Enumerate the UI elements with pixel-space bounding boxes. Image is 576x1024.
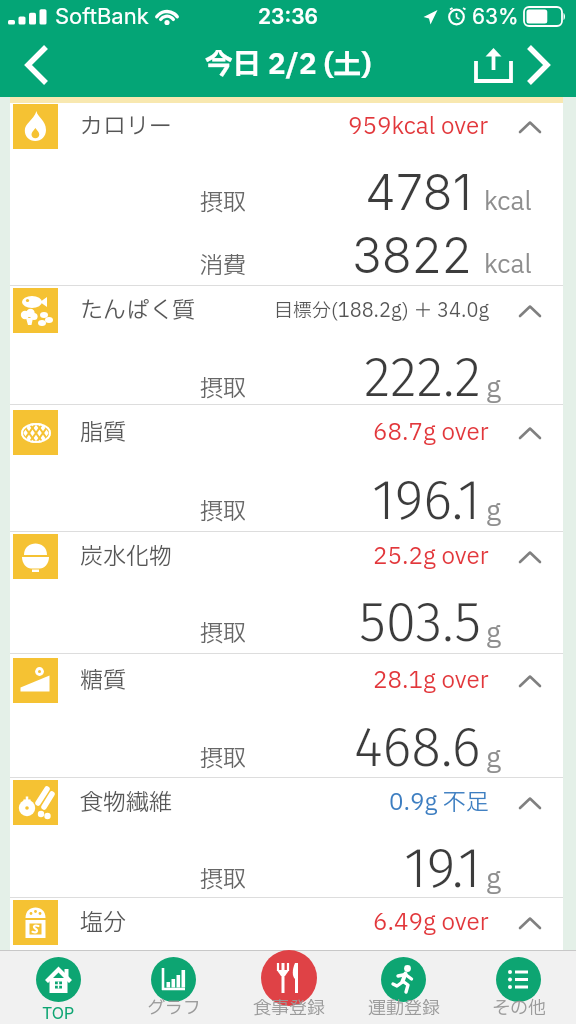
staticText: 摂取	[200, 863, 246, 897]
staticText: 25.2g over	[373, 540, 489, 574]
staticText: その他	[492, 995, 546, 1022]
staticText: 摂取	[200, 372, 246, 406]
staticText: g	[486, 368, 501, 408]
button[interactable]: カロリー	[10, 104, 563, 149]
button[interactable]: その他	[461, 950, 576, 1024]
staticText: 23:36	[258, 4, 318, 29]
staticText: 炭水化物	[80, 540, 172, 574]
staticText: 68.7g over	[373, 416, 489, 450]
staticText: 目標分(188.2g) ＋ 34.0g	[274, 297, 489, 325]
button[interactable]: たんぱく質	[10, 288, 563, 333]
staticText: たんぱく質	[80, 294, 195, 328]
button[interactable]	[474, 35, 513, 95]
staticText: kcal	[484, 247, 532, 284]
staticText: 脂質	[80, 416, 126, 450]
staticText: 28.1g over	[373, 664, 489, 698]
button[interactable]: グラフ	[116, 950, 231, 1024]
staticText: 19.1	[404, 836, 481, 896]
button[interactable]: 糖質	[10, 658, 563, 703]
staticText: 食物繊維	[80, 786, 172, 820]
staticText: 摂取	[200, 495, 246, 529]
staticText: 196.1	[372, 468, 481, 531]
staticText: 食事登録	[253, 995, 325, 1022]
button[interactable]: 運動登録	[346, 950, 461, 1024]
staticText: 摂取	[200, 186, 246, 220]
staticText: g	[486, 491, 501, 531]
staticText: カロリー	[80, 110, 172, 144]
staticText: 63%	[472, 4, 519, 29]
staticText: 消費	[200, 249, 246, 283]
staticText: 468.6	[354, 715, 481, 777]
staticText: TOP	[42, 1003, 75, 1022]
button[interactable]: 食事登録	[231, 950, 346, 1024]
staticText: g	[486, 859, 501, 899]
staticText: 塩分	[80, 906, 126, 940]
button[interactable]: TOP	[0, 950, 116, 1024]
button[interactable]	[13, 35, 61, 95]
staticText: g	[486, 613, 501, 653]
staticText: 3822	[352, 226, 472, 285]
staticText: kcal	[484, 184, 532, 221]
staticText: 摂取	[200, 617, 246, 651]
staticText: グラフ	[147, 995, 201, 1022]
button[interactable]: 炭水化物	[10, 534, 563, 579]
staticText: 摂取	[200, 742, 246, 776]
staticText: SoftBank	[55, 3, 149, 30]
staticText: 222.2	[364, 345, 481, 400]
staticText: 503.5	[359, 590, 481, 653]
button[interactable]: 今日 2/2 (土)	[205, 44, 372, 86]
staticText: 0.9g 不足	[389, 786, 489, 820]
staticText: 6.49g over	[373, 906, 489, 940]
staticText: 4781	[365, 163, 472, 222]
button[interactable]: 食物繊維	[10, 780, 563, 825]
staticText: g	[486, 738, 501, 778]
button[interactable]	[526, 35, 550, 95]
button[interactable]: 脂質	[10, 410, 563, 455]
button[interactable]: 塩分	[10, 900, 563, 945]
staticText: 運動登録	[368, 995, 440, 1022]
staticText: 959kcal over	[348, 110, 489, 144]
staticText: 糖質	[80, 664, 126, 698]
